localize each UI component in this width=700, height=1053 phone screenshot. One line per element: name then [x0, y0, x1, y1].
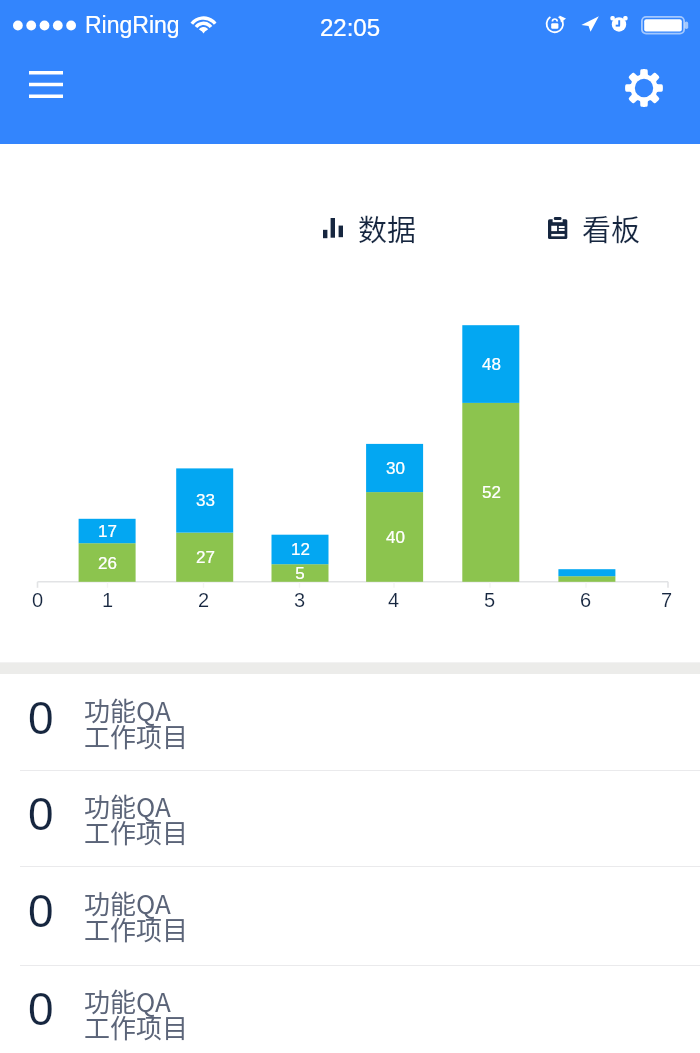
staticText: 33	[196, 491, 215, 510]
staticText: 0	[32, 589, 44, 611]
staticText: 22:05	[320, 14, 381, 41]
button[interactable]: 0	[0, 674, 700, 770]
staticText: 26	[98, 554, 117, 573]
staticText: 5	[295, 564, 305, 583]
button[interactable]: 看板	[548, 205, 641, 251]
button[interactable]: Settings	[611, 58, 676, 118]
staticText: 功能QA 工作项目	[84, 691, 189, 754]
staticText: 4	[388, 589, 400, 611]
staticText: 3	[294, 589, 306, 611]
staticText: 5	[484, 589, 496, 611]
staticText: 0	[28, 983, 53, 1034]
staticText: 功能QA 工作项目	[84, 884, 189, 947]
staticText: 功能QA 工作项目	[84, 982, 189, 1045]
button[interactable]: 0	[0, 965, 700, 1053]
staticText: 功能QA 工作项目	[84, 787, 189, 850]
staticText: 30	[386, 459, 405, 478]
staticText: 7	[661, 589, 673, 611]
button[interactable]: 0	[0, 866, 700, 964]
staticText: 12	[291, 540, 310, 559]
staticText: RingRing	[85, 12, 180, 38]
staticText: 6	[580, 589, 592, 611]
staticText: 0	[28, 885, 53, 936]
staticText: 48	[482, 355, 501, 374]
staticText: 0	[28, 788, 53, 839]
staticText: 40	[386, 528, 405, 547]
button[interactable]: Menu	[12, 54, 80, 114]
button[interactable]: 数据	[323, 205, 417, 251]
staticText: 52	[482, 483, 501, 502]
staticText: 1	[102, 589, 114, 611]
staticText: 看板	[582, 207, 641, 249]
staticText: 27	[196, 548, 215, 567]
staticText: 数据	[358, 207, 417, 249]
staticText: 2	[198, 589, 210, 611]
staticText: 0	[28, 692, 53, 743]
staticText: 17	[98, 522, 117, 541]
button[interactable]: 0	[0, 770, 700, 866]
